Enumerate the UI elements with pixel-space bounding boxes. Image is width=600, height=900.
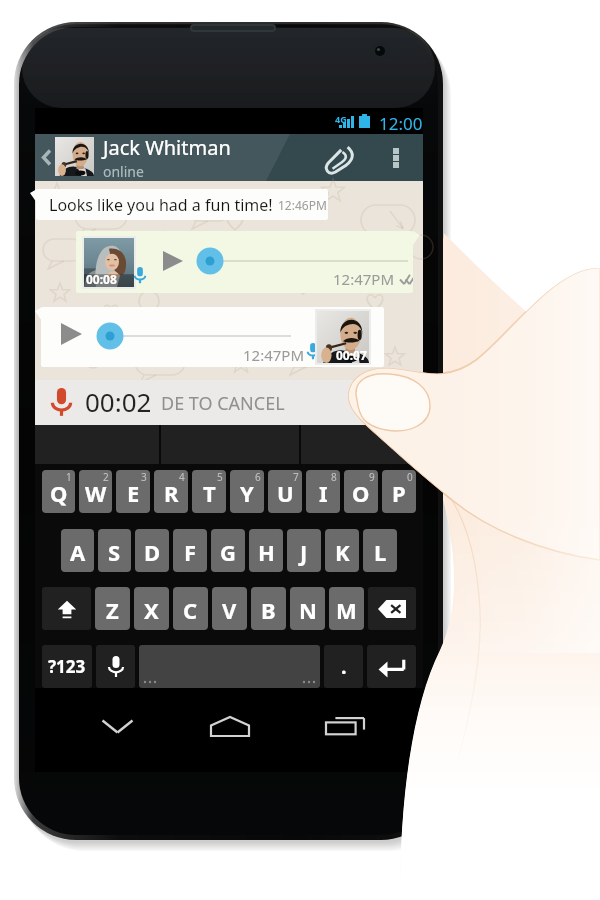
staticText: D xyxy=(144,537,161,567)
button[interactable]: V xyxy=(212,587,247,630)
staticText: Z xyxy=(106,595,119,625)
staticText: 00:07 xyxy=(336,347,367,363)
staticText: 00:08 xyxy=(86,271,117,287)
button[interactable]: S xyxy=(98,529,131,572)
staticText: U xyxy=(277,478,294,508)
button[interactable]: R xyxy=(154,470,188,513)
staticText: 6 xyxy=(255,470,261,484)
button[interactable]: More options xyxy=(381,140,411,176)
staticText: 7 xyxy=(293,470,299,484)
button[interactable]: Recent apps xyxy=(325,706,365,746)
staticText: ?123 xyxy=(48,655,86,678)
button[interactable]: Voice input xyxy=(96,645,135,688)
staticText: 8 xyxy=(331,470,337,484)
staticText: M xyxy=(336,595,357,625)
staticText: Y xyxy=(240,478,254,508)
staticText: Q xyxy=(50,478,68,508)
staticText: 9 xyxy=(369,470,375,484)
button[interactable]: Back xyxy=(37,142,55,172)
staticText: Looks like you had a fun time! xyxy=(49,194,273,216)
staticText: 0 xyxy=(407,470,413,484)
staticText: 12:47PM xyxy=(243,345,305,365)
staticText: 12:46PM xyxy=(278,197,327,213)
staticText: I xyxy=(319,478,328,508)
button[interactable]: Enter xyxy=(367,645,416,688)
staticText: 12:47PM xyxy=(333,269,395,289)
button[interactable]: E xyxy=(116,470,150,513)
staticText: online xyxy=(103,162,144,181)
staticText: . xyxy=(341,653,347,680)
staticText: L xyxy=(374,537,387,567)
staticText: K xyxy=(335,537,350,567)
button[interactable]: C xyxy=(173,587,208,630)
staticText: S xyxy=(108,537,121,567)
button[interactable]: J xyxy=(287,529,321,572)
staticText: X xyxy=(144,595,159,625)
button[interactable]: Attach file xyxy=(317,140,361,176)
staticText: N xyxy=(299,595,317,625)
button[interactable]: Looks like you had a fun time! xyxy=(36,189,328,220)
button[interactable]: 00:02 xyxy=(35,380,423,425)
staticText: H xyxy=(258,537,275,567)
button[interactable]: X xyxy=(134,587,169,630)
button[interactable]: Space xyxy=(139,645,320,688)
button[interactable]: H xyxy=(249,529,283,572)
button[interactable]: U xyxy=(268,470,302,513)
button[interactable] xyxy=(301,425,423,464)
staticText: T xyxy=(203,478,216,508)
staticText: DE TO CANCEL xyxy=(161,391,285,416)
button[interactable]: I xyxy=(306,470,340,513)
staticText: 12:00 xyxy=(379,112,423,135)
button[interactable]: 00:08 xyxy=(76,231,413,293)
staticText: P xyxy=(392,478,406,508)
button[interactable]: F xyxy=(173,529,207,572)
staticText: O xyxy=(352,478,370,508)
staticText: 00:02 xyxy=(85,384,152,419)
button[interactable]: Home xyxy=(210,706,250,746)
button[interactable]: Z xyxy=(95,587,130,630)
staticText: 3 xyxy=(141,470,147,484)
button[interactable]: Q xyxy=(42,470,75,513)
button[interactable]: Hide keyboard xyxy=(97,706,137,746)
button[interactable]: Shift xyxy=(42,587,91,630)
staticText: A xyxy=(70,537,86,567)
button[interactable]: T xyxy=(192,470,226,513)
staticText: G xyxy=(220,537,236,567)
staticText: B xyxy=(261,595,276,625)
staticText: W xyxy=(85,478,107,508)
button[interactable]: Symbols xyxy=(42,645,92,688)
button[interactable]: Y xyxy=(230,470,264,513)
staticText: 1 xyxy=(66,470,72,484)
button[interactable]: K xyxy=(325,529,359,572)
staticText: C xyxy=(183,595,198,625)
button[interactable]: 12:47PM xyxy=(41,307,384,367)
button[interactable]: G xyxy=(211,529,245,572)
button[interactable]: O xyxy=(344,470,378,513)
staticText: J xyxy=(300,537,308,567)
button[interactable]: W xyxy=(79,470,112,513)
button[interactable]: D xyxy=(135,529,169,572)
button[interactable]: P xyxy=(382,470,416,513)
staticText: 4 xyxy=(179,470,185,484)
button[interactable]: Backspace xyxy=(368,587,416,630)
staticText: F xyxy=(184,537,197,567)
staticText: 5 xyxy=(217,470,223,484)
button[interactable]: L xyxy=(363,529,397,572)
button[interactable]: Period xyxy=(324,645,363,688)
staticText: 2 xyxy=(103,470,109,484)
button[interactable]: B xyxy=(251,587,286,630)
button[interactable]: Jack Whitman xyxy=(55,134,443,181)
button[interactable]: M xyxy=(329,587,364,630)
staticText: V xyxy=(222,595,237,625)
button[interactable]: A xyxy=(61,529,94,572)
staticText: 4G xyxy=(335,113,347,125)
button[interactable]: N xyxy=(290,587,325,630)
staticText: E xyxy=(127,478,140,508)
staticText: Jack Whitman xyxy=(103,134,231,161)
staticText: R xyxy=(164,478,179,508)
